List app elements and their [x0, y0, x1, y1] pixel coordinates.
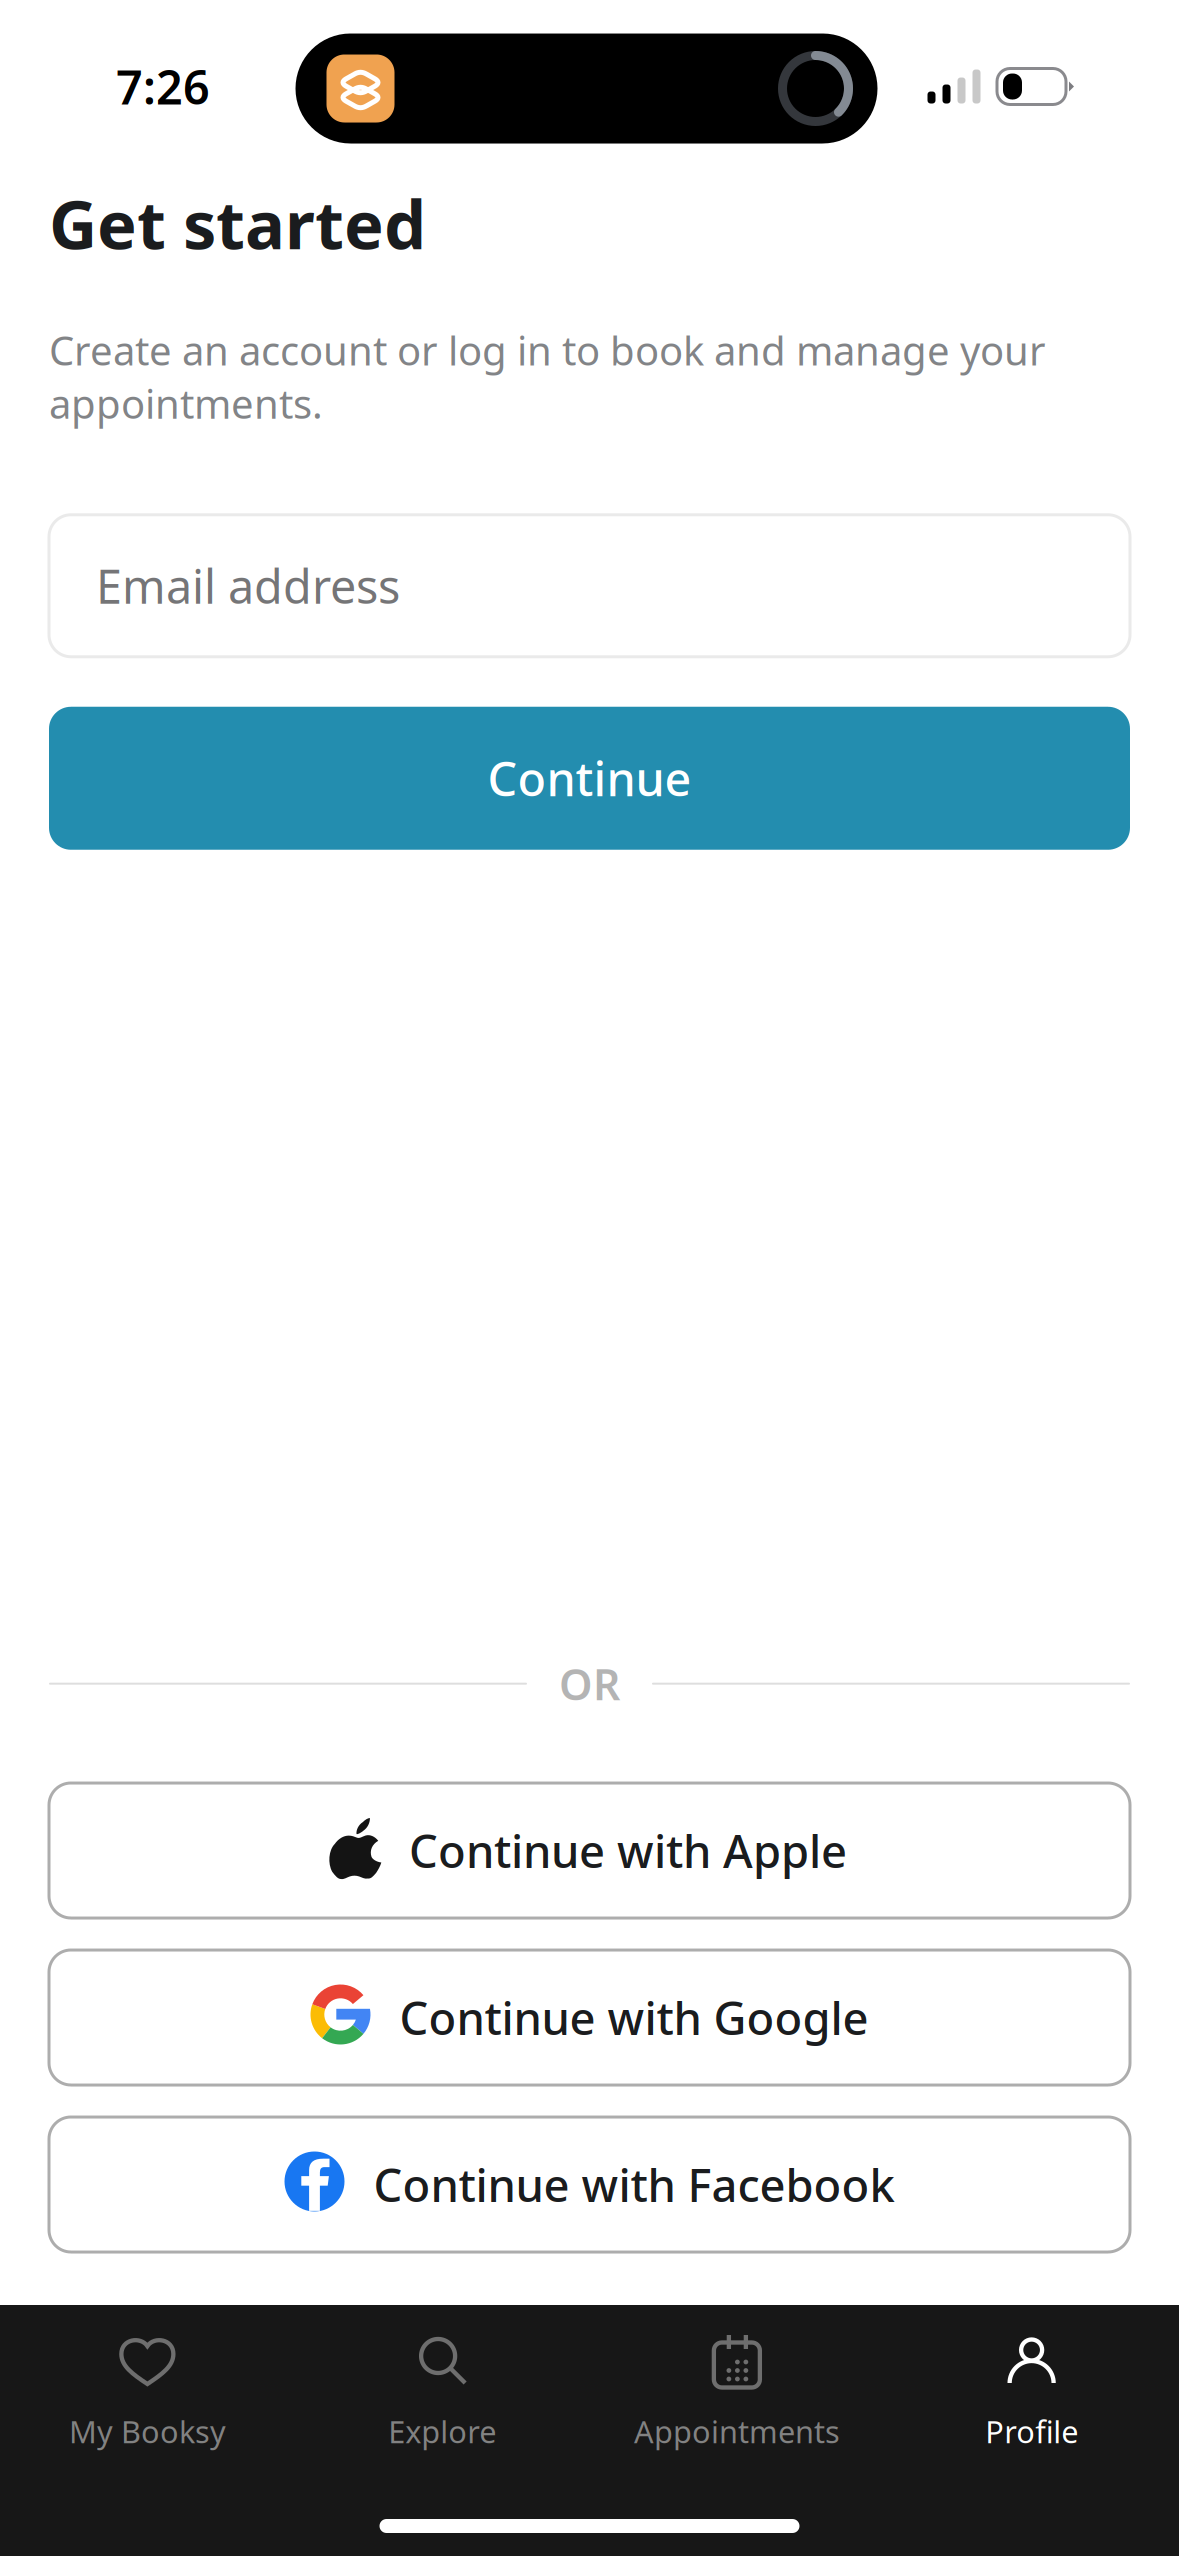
staticText: Appointments	[634, 2411, 840, 2452]
staticText: Explore	[388, 2411, 496, 2452]
staticText: Continue with Facebook	[373, 2154, 894, 2215]
staticText: Get started	[49, 179, 426, 267]
button[interactable]: Explore	[295, 2333, 590, 2452]
staticText: My Booksy	[69, 2411, 226, 2452]
button[interactable]: Continue with Apple	[49, 1783, 1130, 1918]
staticText: Create an account or log in to book and …	[49, 323, 1046, 430]
button[interactable]: Profile	[884, 2333, 1179, 2452]
staticText: Continue with Google	[399, 1987, 868, 2048]
button[interactable]: Email address	[49, 515, 1130, 657]
button[interactable]: Appointments	[589, 2333, 884, 2452]
staticText: 7:26	[116, 55, 210, 117]
staticText: OR	[559, 1655, 620, 1712]
staticText: Email address	[96, 555, 400, 617]
button[interactable]: Continue	[49, 707, 1130, 850]
staticText: Continue with Apple	[409, 1820, 847, 1881]
staticText: Profile	[985, 2411, 1078, 2452]
button[interactable]: My Booksy	[0, 2333, 295, 2452]
button[interactable]: Continue with Google	[49, 1950, 1130, 2085]
button[interactable]: Continue with Facebook	[49, 2117, 1130, 2252]
staticText: Continue	[487, 747, 691, 809]
